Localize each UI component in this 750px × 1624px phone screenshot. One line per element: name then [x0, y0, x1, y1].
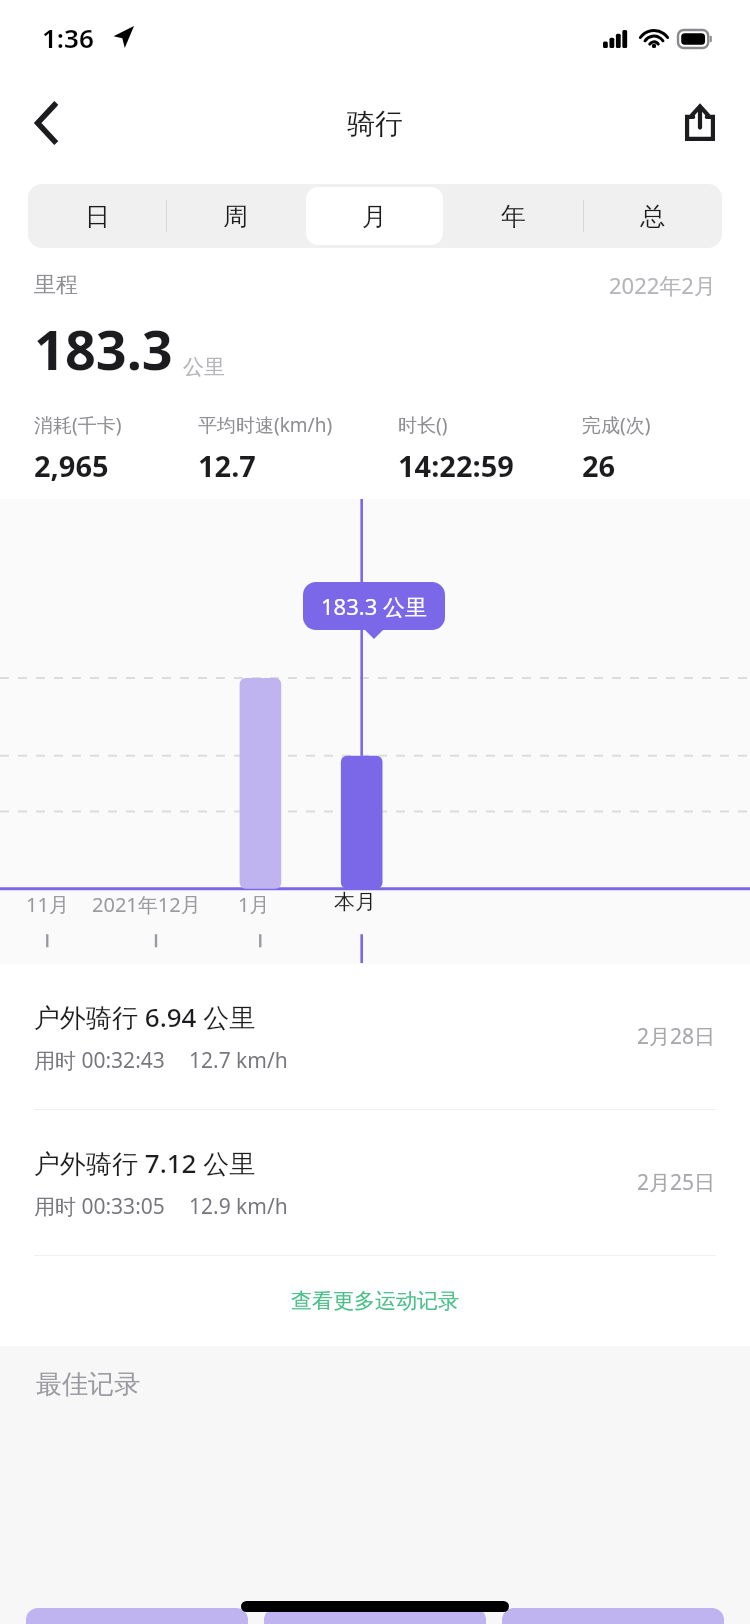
staticText: 183.3: [34, 312, 173, 386]
staticText: 14:22:59: [398, 446, 514, 485]
staticText: 11月: [26, 891, 69, 918]
staticText: 2022年2月: [609, 270, 716, 300]
staticText: 公里: [183, 354, 225, 380]
staticText: 183.3 公里: [321, 591, 427, 621]
staticText: 2021年12月: [92, 891, 201, 918]
staticText: 里程: [34, 271, 78, 299]
staticText: 1月: [238, 891, 270, 918]
staticText: 消耗(千卡): [34, 412, 122, 438]
button[interactable]: 周: [166, 184, 305, 248]
staticText: 骑行: [347, 106, 403, 141]
staticText: 日: [85, 201, 110, 232]
button[interactable]: 年: [444, 184, 583, 248]
staticText: 月: [362, 201, 387, 232]
staticText: 2月25日: [637, 1168, 716, 1197]
staticText: 12.9 km/h: [189, 1192, 288, 1221]
button[interactable]: [26, 1608, 248, 1624]
button[interactable]: 月: [305, 184, 444, 248]
staticText: 周: [223, 201, 248, 232]
staticText: 本月: [334, 889, 376, 915]
staticText: 户外骑行 7.12 公里: [34, 1145, 256, 1181]
staticText: 时长(): [398, 412, 448, 438]
staticText: 查看更多运动记录: [291, 1288, 459, 1314]
staticText: 总: [640, 201, 665, 232]
button[interactable]: Share: [668, 91, 732, 155]
staticText: 用时 00:32:43: [34, 1046, 165, 1075]
staticText: 1:36: [42, 20, 94, 55]
staticText: 平均时速(km/h): [198, 412, 333, 438]
staticText: 12.7 km/h: [189, 1046, 288, 1075]
staticText: 户外骑行 6.94 公里: [34, 999, 256, 1035]
staticText: 2,965: [34, 446, 109, 485]
button[interactable]: 查看更多运动记录: [0, 1256, 750, 1346]
staticText: 26: [582, 446, 616, 485]
staticText: 最佳记录: [36, 1368, 140, 1401]
staticText: 年: [501, 201, 526, 232]
staticText: 12.7: [198, 446, 256, 485]
staticText: 完成(次): [582, 412, 651, 438]
staticText: 用时 00:33:05: [34, 1192, 165, 1221]
button[interactable]: 户外骑行 7.12 公里: [0, 1110, 750, 1255]
button[interactable]: Back: [14, 91, 78, 155]
button[interactable]: 日: [28, 184, 166, 248]
button[interactable]: 总: [583, 184, 722, 248]
button[interactable]: [264, 1608, 486, 1624]
button[interactable]: 户外骑行 6.94 公里: [0, 964, 750, 1109]
staticText: 2月28日: [637, 1022, 716, 1051]
button[interactable]: [502, 1608, 724, 1624]
